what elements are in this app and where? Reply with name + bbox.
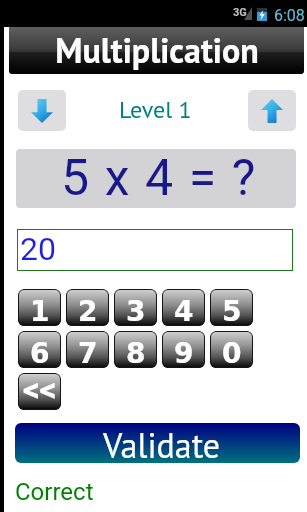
staticText: 5: [222, 295, 242, 326]
staticText: 1: [30, 295, 50, 326]
staticText: 6: [30, 337, 50, 368]
staticText: 6:08: [274, 6, 305, 25]
staticText: 20: [20, 230, 56, 268]
staticText: Correct: [15, 478, 94, 506]
button[interactable]: Validate: [15, 423, 300, 463]
button[interactable]: 8: [114, 331, 157, 368]
staticText: 3: [126, 295, 146, 326]
staticText: 7: [78, 337, 98, 368]
staticText: Multiplication: [55, 28, 259, 72]
staticText: 0: [222, 337, 242, 368]
button[interactable]: 1: [18, 289, 61, 326]
staticText: 3G: [233, 6, 247, 19]
staticText: 2: [78, 295, 98, 326]
button[interactable]: 4: [162, 289, 205, 326]
button[interactable]: 6: [18, 331, 61, 368]
button[interactable]: <<: [18, 373, 61, 410]
button[interactable]: Next level: [248, 90, 296, 131]
button[interactable]: 9: [162, 331, 205, 368]
staticText: 9: [174, 337, 194, 368]
staticText: <<: [23, 373, 57, 407]
button[interactable]: 2: [66, 289, 109, 326]
button[interactable]: 5: [210, 289, 253, 326]
button[interactable]: 7: [66, 331, 109, 368]
button[interactable]: 20: [17, 229, 293, 271]
button[interactable]: 3: [114, 289, 157, 326]
staticText: 5 x 4 = ?: [61, 149, 258, 208]
button[interactable]: Previous level: [18, 90, 66, 131]
staticText: Level 1: [119, 94, 192, 125]
button[interactable]: 0: [210, 331, 253, 368]
staticText: 4: [174, 295, 194, 326]
staticText: 8: [126, 337, 146, 368]
staticText: Validate: [103, 423, 221, 463]
